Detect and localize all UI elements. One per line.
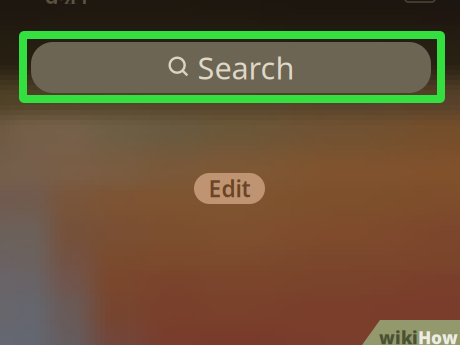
staticText: 9:41 — [45, 0, 90, 16]
staticText: Search — [197, 47, 294, 88]
staticText: wiki — [379, 326, 418, 345]
button[interactable]: Edit — [194, 173, 265, 204]
button[interactable]: Search — [31, 42, 431, 93]
staticText: Edit — [208, 173, 250, 203]
staticText: How — [418, 326, 458, 345]
